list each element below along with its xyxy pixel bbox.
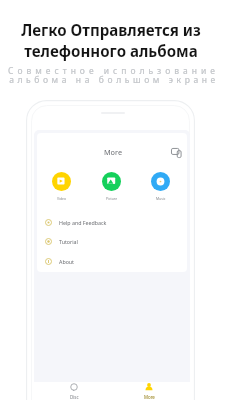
button[interactable]: More — [137, 382, 161, 400]
staticText: альбома на большом экране — [9, 74, 219, 86]
button[interactable]: Disc — [62, 382, 86, 400]
button[interactable]: Music — [151, 172, 170, 201]
button[interactable]: Video — [52, 172, 71, 201]
staticText: Tutorial — [59, 238, 78, 245]
button[interactable]: Tutorial — [37, 231, 187, 251]
staticText: телефонного альбома — [24, 41, 198, 62]
staticText: Disc — [70, 394, 79, 400]
staticText: More — [144, 394, 155, 400]
staticText: Легко Отправляется из — [21, 20, 201, 41]
staticText: About — [59, 258, 75, 265]
staticText: Picture — [106, 196, 118, 201]
button[interactable]: Messages — [170, 147, 184, 159]
staticText: Video — [57, 196, 66, 201]
button[interactable]: Picture — [102, 172, 121, 201]
button[interactable]: Help and Feedback — [37, 212, 187, 232]
staticText: Совместное использование — [8, 65, 219, 77]
staticText: Music — [156, 196, 166, 201]
staticText: Help and Feedback — [59, 219, 107, 226]
staticText: More — [104, 147, 123, 157]
button[interactable]: About — [37, 251, 187, 271]
